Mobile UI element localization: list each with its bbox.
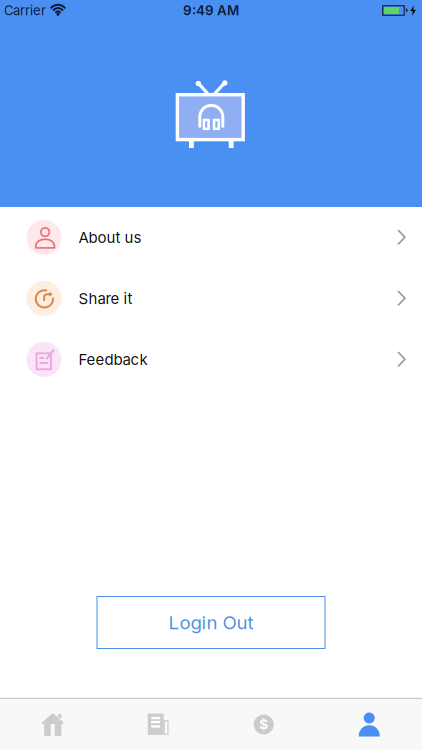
- staticText: Feedback: [78, 350, 147, 368]
- button[interactable]: Share it: [0, 268, 422, 329]
- staticText: $: [259, 716, 268, 732]
- button[interactable]: Home: [0, 699, 105, 750]
- button[interactable]: Login Out: [96, 596, 325, 649]
- button[interactable]: About us: [0, 207, 422, 268]
- staticText: Carrier: [4, 3, 46, 18]
- button[interactable]: News: [105, 699, 211, 750]
- staticText: Login Out: [168, 611, 253, 634]
- staticText: Share it: [78, 289, 132, 307]
- button[interactable]: Earnings: [211, 699, 316, 750]
- staticText: About us: [78, 228, 141, 246]
- button[interactable]: Profile: [316, 699, 422, 750]
- button[interactable]: Feedback: [0, 329, 422, 390]
- staticText: 9:49 AM: [183, 2, 239, 18]
